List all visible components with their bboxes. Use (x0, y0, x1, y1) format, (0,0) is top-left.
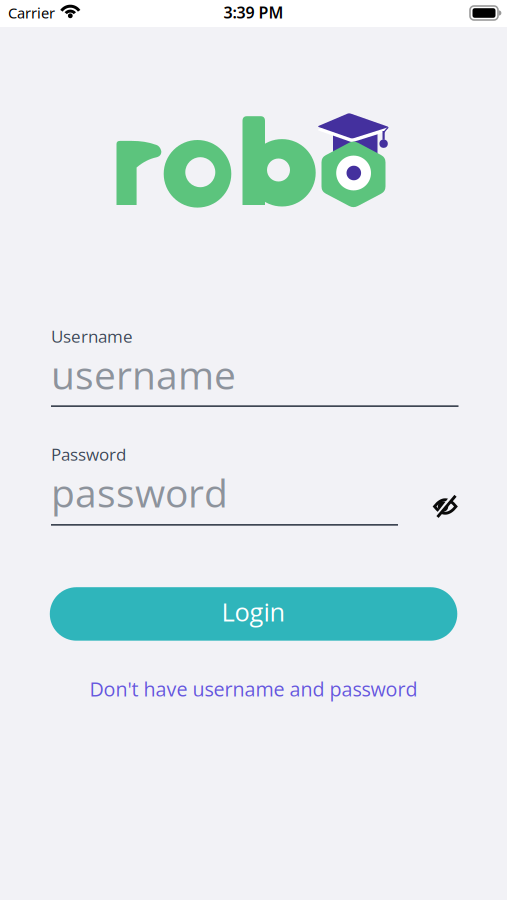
staticText: Carrier (8, 3, 55, 22)
button[interactable]: Show password (432, 494, 458, 519)
button[interactable]: Don't have username and password (89, 675, 417, 702)
staticText: username (51, 348, 236, 401)
staticText: Username (51, 325, 133, 348)
staticText: 3:39 PM (223, 2, 283, 23)
staticText: Login (222, 594, 286, 629)
staticText: Don't have username and password (89, 675, 417, 702)
staticText: Password (51, 443, 126, 466)
button[interactable]: Login (50, 587, 457, 641)
staticText: password (51, 466, 228, 519)
